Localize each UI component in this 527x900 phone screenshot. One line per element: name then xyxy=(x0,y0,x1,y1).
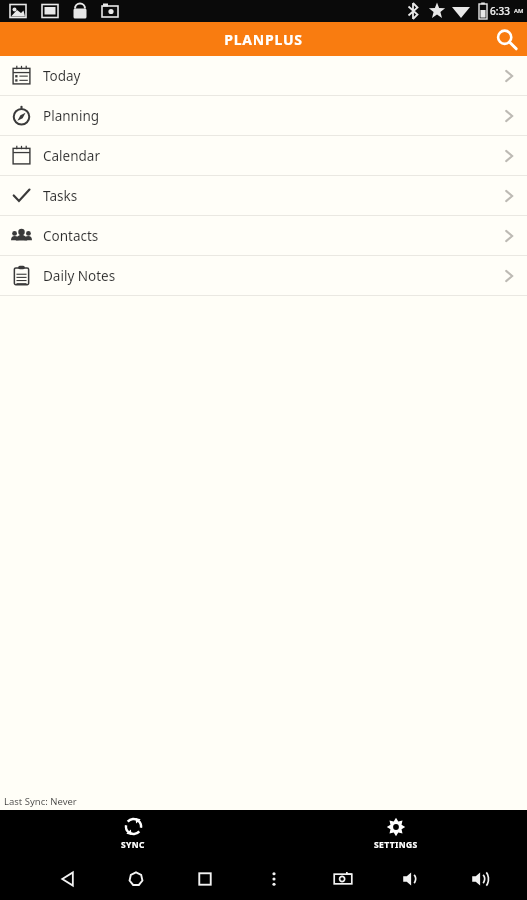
staticText: Last Sync: Never xyxy=(4,795,77,808)
staticText: Tasks xyxy=(43,187,78,205)
staticText: Planning xyxy=(43,107,100,125)
button[interactable]: Volume up xyxy=(446,857,515,900)
staticText: Daily Notes xyxy=(43,267,116,285)
staticText: Today xyxy=(43,67,81,85)
button[interactable]: Back xyxy=(34,857,102,900)
button[interactable]: Recents xyxy=(170,857,239,900)
button[interactable]: SYNC xyxy=(106,810,160,857)
staticText: 6:33 xyxy=(490,4,513,18)
button[interactable]: Contacts xyxy=(0,216,527,255)
button[interactable]: Today xyxy=(0,56,527,95)
staticText: Contacts xyxy=(43,227,99,245)
button[interactable]: Screenshot xyxy=(308,857,377,900)
staticText: PLANPLUS xyxy=(224,30,303,49)
staticText: SYNC xyxy=(121,839,145,851)
staticText: Calendar xyxy=(43,147,100,165)
button[interactable]: Daily Notes xyxy=(0,256,527,295)
button[interactable]: SETTINGS xyxy=(360,810,432,857)
button[interactable]: Tasks xyxy=(0,176,527,215)
button[interactable]: Calendar xyxy=(0,136,527,175)
button[interactable]: Search xyxy=(487,22,525,56)
button[interactable]: Home xyxy=(102,857,170,900)
staticText: AM xyxy=(514,7,524,15)
button[interactable]: More options xyxy=(239,857,308,900)
button[interactable]: Volume down xyxy=(377,857,446,900)
button[interactable]: Planning xyxy=(0,96,527,135)
staticText: SETTINGS xyxy=(374,839,418,851)
